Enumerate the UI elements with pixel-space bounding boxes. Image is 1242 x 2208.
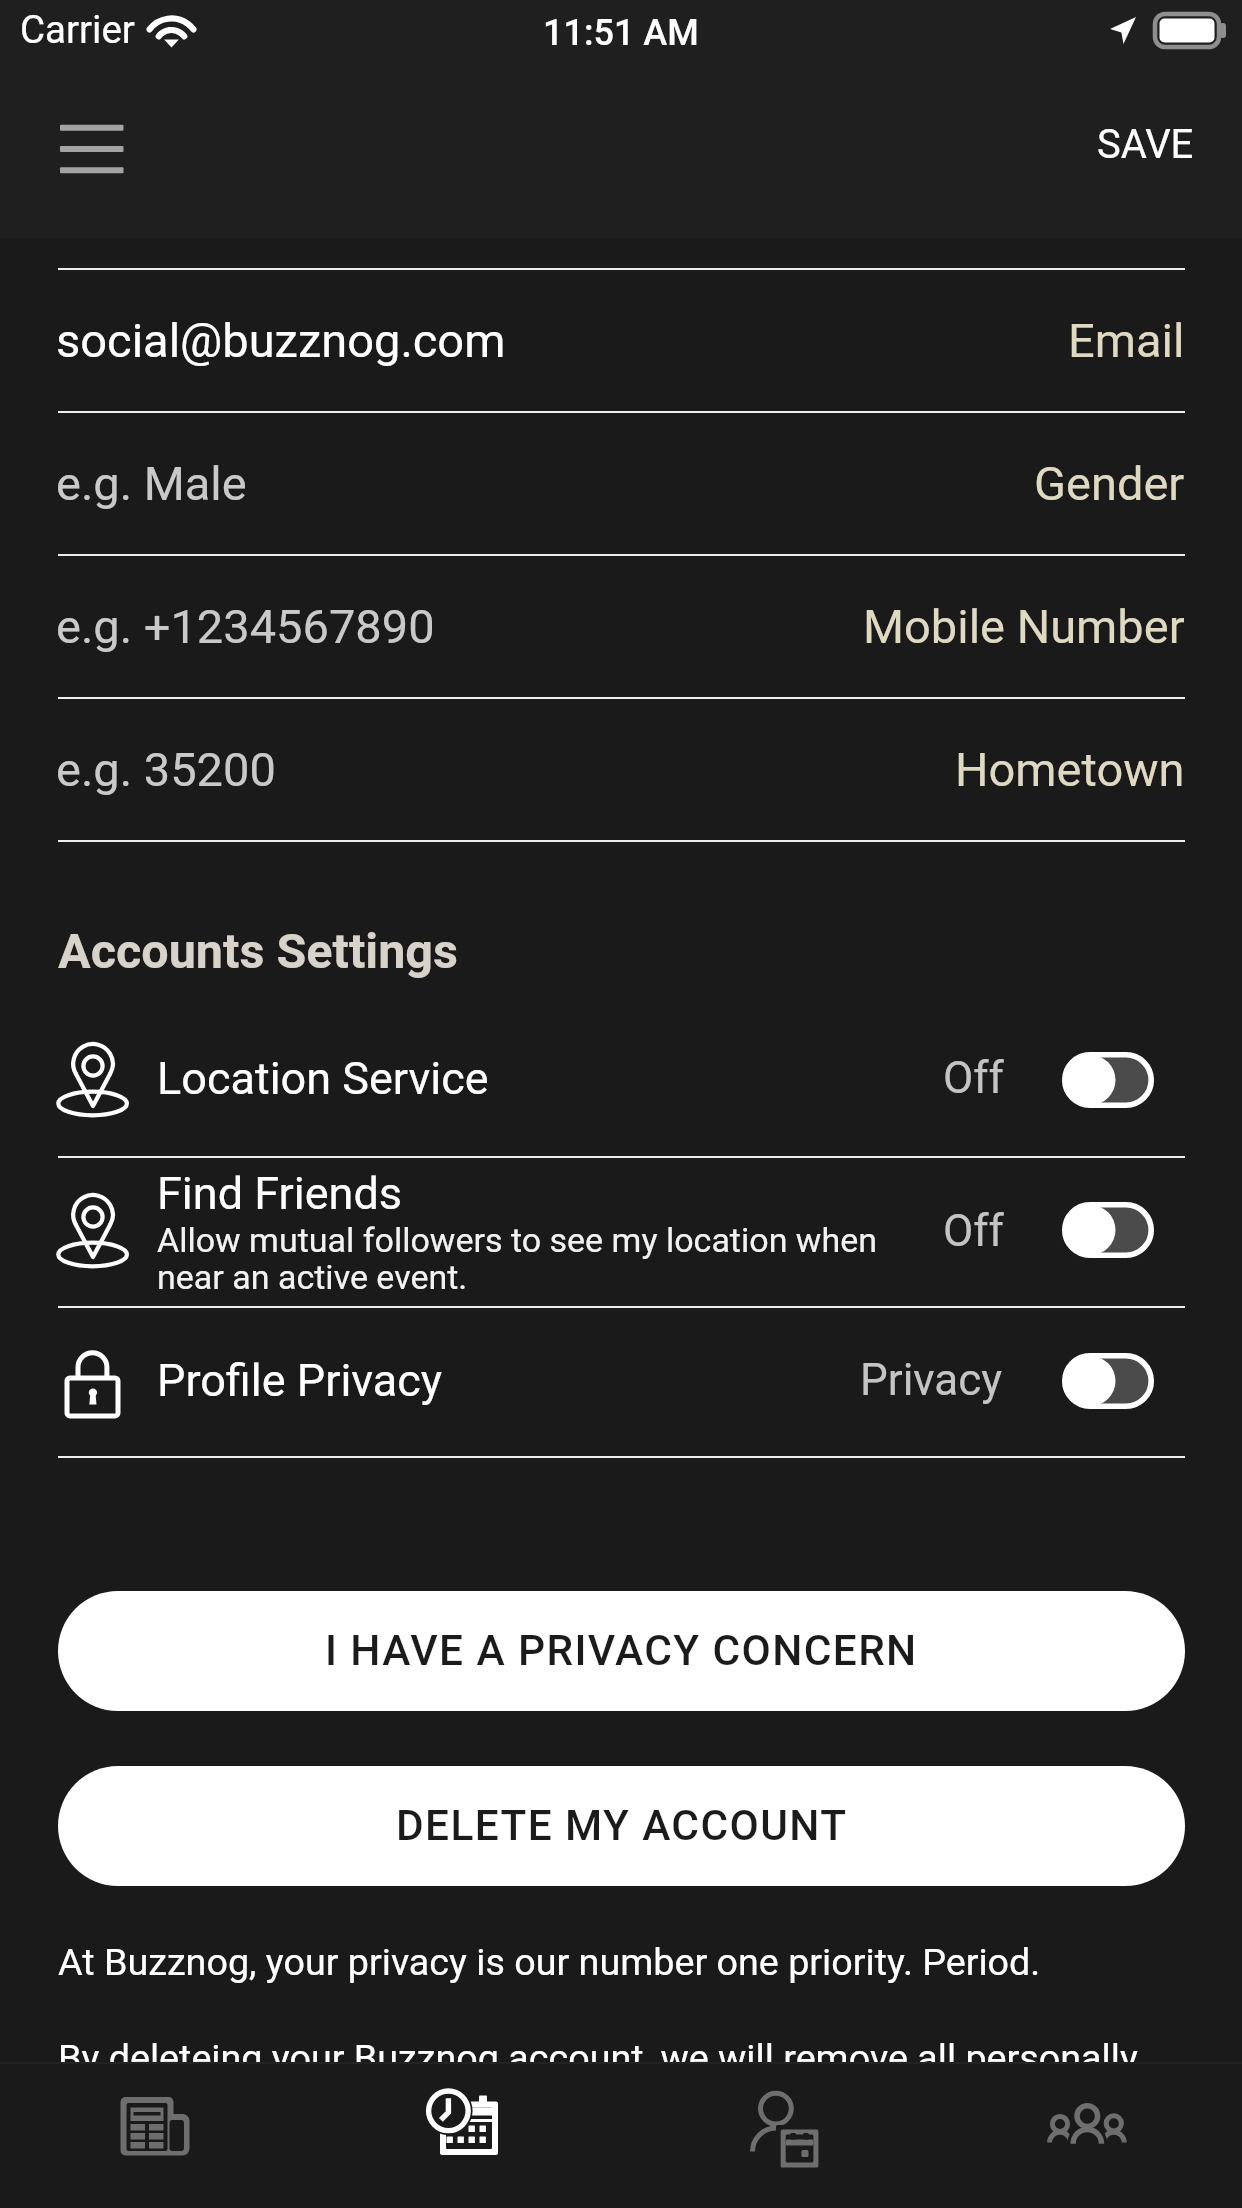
staticText: e.g. Male	[56, 456, 247, 511]
staticText: Location Service	[157, 1052, 489, 1105]
staticText: Gender	[1034, 456, 1185, 511]
staticText: Off	[943, 1052, 1004, 1104]
staticText: SAVE	[1097, 121, 1194, 168]
staticText: DELETE MY ACCOUNT	[396, 1801, 848, 1851]
button[interactable]: Open navigation menu	[36, 106, 148, 192]
staticText: I HAVE A PRIVACY CONCERN	[325, 1626, 918, 1676]
staticText: Mobile Number	[863, 599, 1185, 654]
button[interactable]: SAVE	[1010, 104, 1194, 184]
staticText: Allow mutual followers to see my locatio…	[157, 1220, 877, 1297]
button[interactable]: Community	[1046, 2084, 1126, 2164]
button[interactable]: Profile Privacy	[0, 1307, 1242, 1456]
button[interactable]: Toggle	[1062, 1353, 1154, 1409]
staticText: e.g. +1234567890	[56, 599, 435, 654]
staticText: Off	[943, 1205, 1004, 1257]
staticText: social@buzznog.com	[56, 313, 506, 368]
button[interactable]: I HAVE A PRIVACY CONCERN	[58, 1591, 1185, 1711]
button[interactable]: Location Service	[0, 1005, 1242, 1156]
button[interactable]: Toggle	[1062, 1202, 1154, 1258]
button[interactable]: News	[115, 2086, 195, 2166]
staticText: Email	[1068, 313, 1185, 368]
staticText: At Buzznog, your privacy is our number o…	[58, 1940, 1138, 2080]
button[interactable]: social@buzznog.com	[0, 269, 1242, 412]
staticText: 11:51 AM	[543, 12, 699, 54]
button[interactable]: Toggle	[1062, 1052, 1154, 1108]
staticText: e.g. 35200	[56, 742, 276, 797]
button[interactable]: e.g. 35200	[0, 698, 1242, 841]
staticText: Hometown	[955, 742, 1185, 797]
button[interactable]: Events	[429, 2088, 509, 2168]
button[interactable]: DELETE MY ACCOUNT	[58, 1766, 1185, 1886]
staticText: Privacy	[860, 1354, 1003, 1406]
button[interactable]: My schedule	[744, 2089, 824, 2169]
staticText: Find Friends	[157, 1167, 403, 1220]
staticText: Carrier	[20, 7, 135, 52]
staticText: Accounts Settings	[58, 923, 458, 980]
button[interactable]: e.g. +1234567890	[0, 555, 1242, 698]
button[interactable]: e.g. Male	[0, 412, 1242, 555]
button[interactable]: Find Friends	[0, 1158, 1242, 1306]
staticText: Profile Privacy	[157, 1354, 443, 1407]
